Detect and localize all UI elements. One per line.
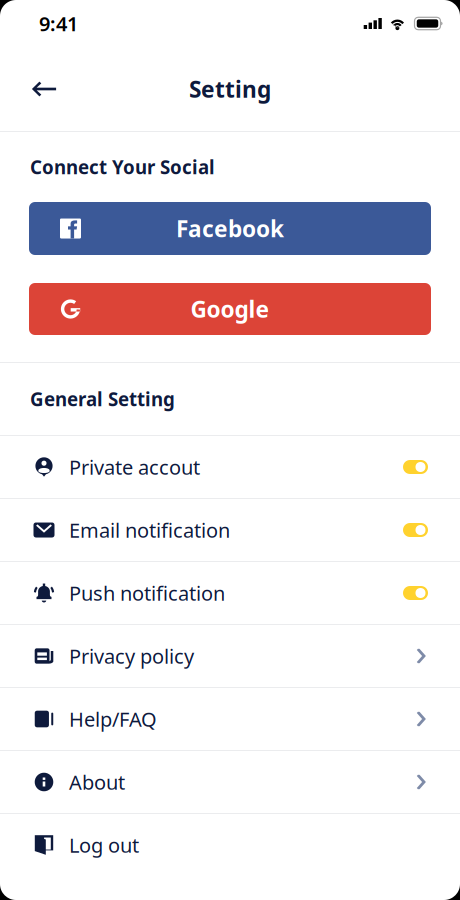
button[interactable]: Privacy policy: [0, 625, 460, 687]
staticText: About: [69, 769, 125, 795]
staticText: Private accout: [69, 454, 200, 480]
staticText: Help/FAQ: [69, 706, 157, 732]
button[interactable]: Help/FAQ: [0, 688, 460, 750]
staticText: Privacy policy: [69, 643, 194, 669]
staticText: 9:41: [39, 10, 78, 37]
button[interactable]: Private accout: [0, 436, 460, 498]
staticText: General Setting: [30, 387, 175, 411]
staticText: Google: [190, 294, 269, 324]
staticText: Facebook: [176, 213, 284, 243]
button[interactable]: Google: [29, 283, 431, 335]
button[interactable]: Facebook: [29, 202, 431, 255]
staticText: Push notification: [69, 580, 225, 606]
staticText: Setting: [189, 74, 271, 104]
staticText: Connect Your Social: [30, 155, 215, 179]
staticText: Log out: [69, 832, 139, 858]
button[interactable]: Email notification: [0, 499, 460, 561]
button[interactable]: Push notification: [0, 562, 460, 624]
button[interactable]: Log out: [0, 814, 460, 876]
staticText: Email notification: [69, 517, 230, 543]
button[interactable]: About: [0, 751, 460, 813]
button[interactable]: Back: [22, 67, 66, 111]
